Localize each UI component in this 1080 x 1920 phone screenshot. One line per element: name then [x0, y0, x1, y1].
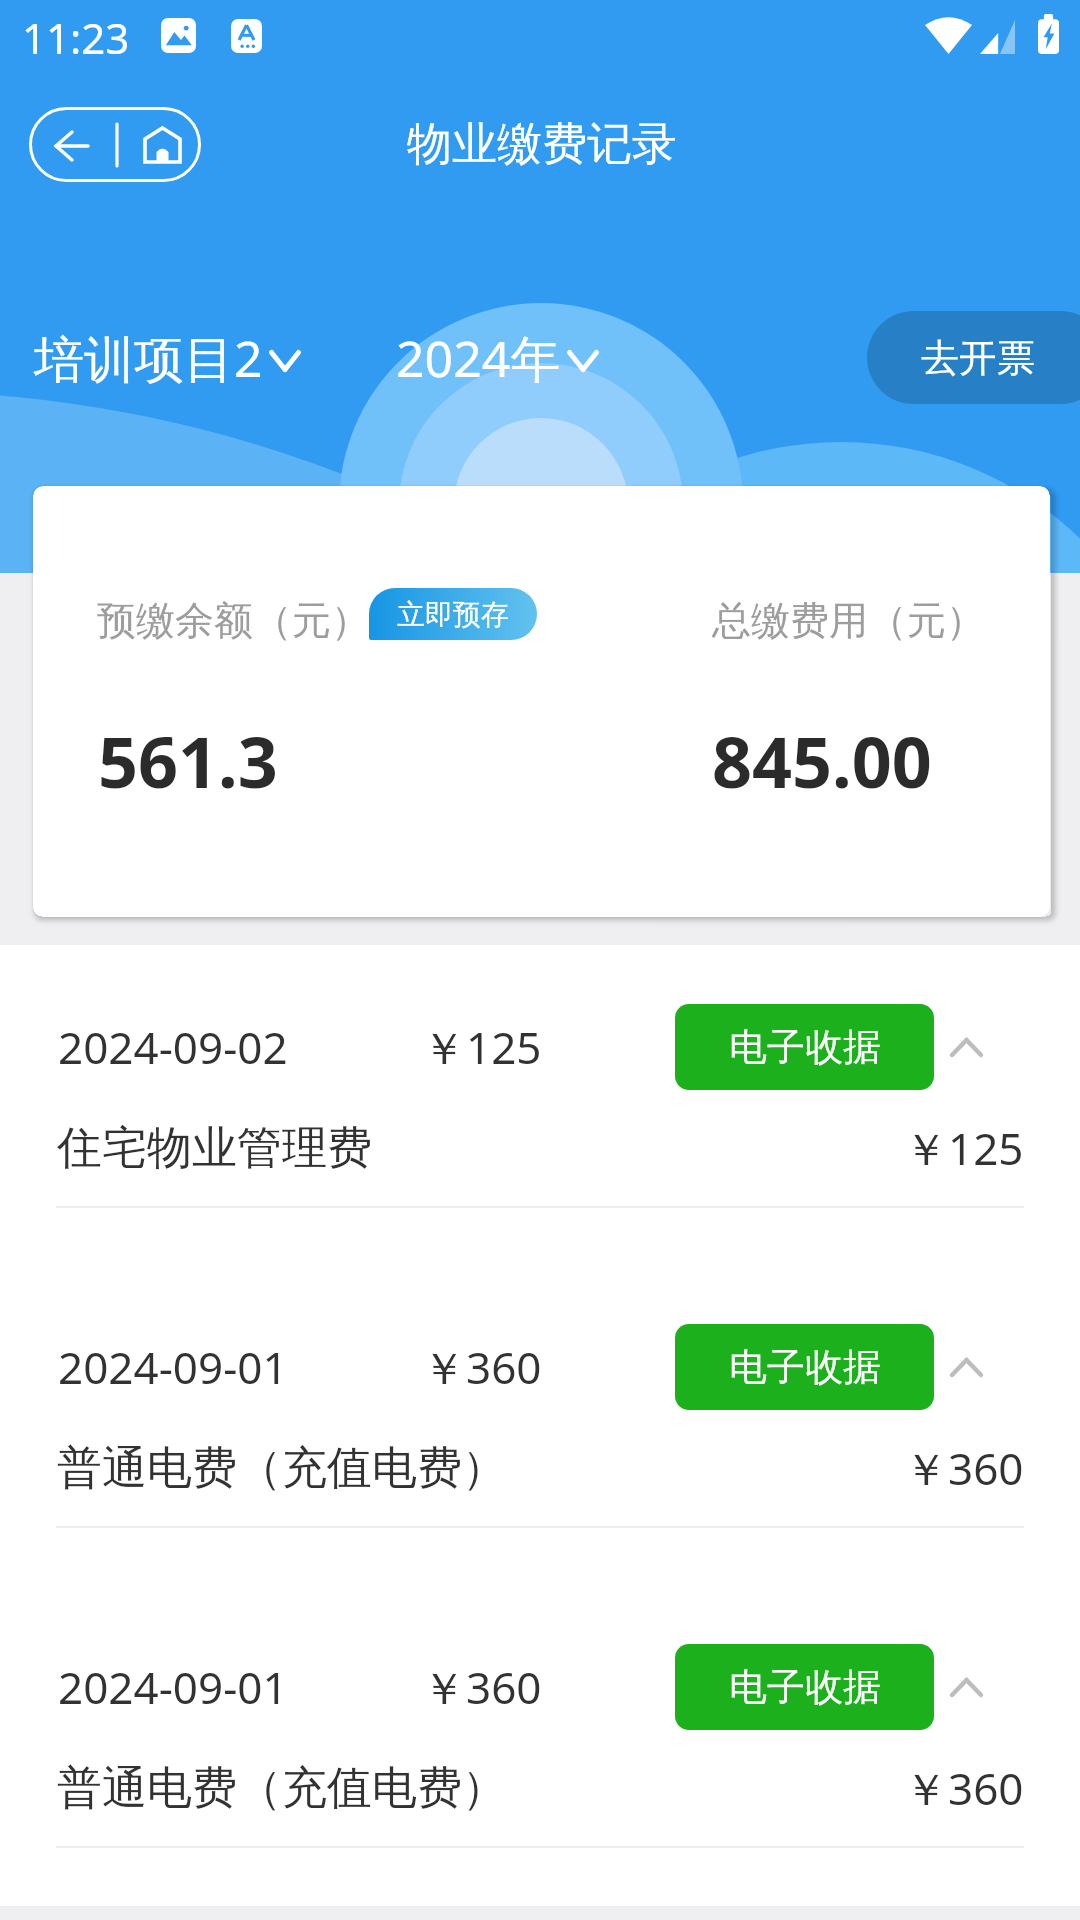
- button[interactable]: Collapse: [936, 1017, 996, 1077]
- staticText: 2024-09-01: [58, 1337, 288, 1397]
- staticText: ￥360: [904, 1438, 1024, 1498]
- staticText: 845.00: [712, 713, 932, 808]
- staticText: 电子收据: [729, 1343, 881, 1391]
- button[interactable]: 电子收据: [675, 1004, 934, 1090]
- staticText: 去开票: [921, 334, 1035, 382]
- button[interactable]: 电子收据: [675, 1644, 934, 1730]
- staticText: 11:23: [22, 9, 130, 66]
- staticText: 2024年: [396, 324, 561, 392]
- staticText: 立即预存: [397, 597, 509, 632]
- staticText: ￥360: [422, 1657, 542, 1717]
- button[interactable]: 2024-09-02: [0, 945, 1080, 1265]
- staticText: 561.3: [98, 713, 278, 808]
- staticText: 普通电费（充值电费）: [57, 1440, 507, 1497]
- staticText: 普通电费（充值电费）: [57, 1760, 507, 1817]
- staticText: ￥360: [904, 1758, 1024, 1818]
- button[interactable]: 培训项目2: [34, 324, 301, 392]
- button[interactable]: 2024年: [396, 324, 599, 392]
- staticText: ￥360: [422, 1337, 542, 1397]
- staticText: 住宅物业管理费: [57, 1120, 372, 1177]
- button[interactable]: Collapse: [936, 1337, 996, 1397]
- staticText: 培训项目2: [34, 324, 263, 392]
- staticText: 2024-09-01: [58, 1657, 288, 1717]
- staticText: 物业缴费记录: [407, 116, 677, 173]
- button[interactable]: 去开票: [867, 311, 1080, 404]
- button[interactable]: Collapse: [936, 1657, 996, 1717]
- staticText: 总缴费用（元）: [712, 596, 985, 645]
- staticText: 预缴余额（元）: [97, 596, 370, 645]
- staticText: ￥125: [904, 1118, 1024, 1178]
- button[interactable]: 立即预存: [369, 588, 537, 640]
- staticText: 2024-09-02: [58, 1017, 288, 1077]
- staticText: 电子收据: [729, 1663, 881, 1711]
- button[interactable]: 电子收据: [675, 1324, 934, 1410]
- staticText: ￥125: [422, 1017, 542, 1077]
- button[interactable]: 2024-09-01: [0, 1265, 1080, 1585]
- button[interactable]: Back and Home: [29, 107, 201, 182]
- staticText: 电子收据: [729, 1023, 881, 1071]
- button[interactable]: 2024-09-01: [0, 1585, 1080, 1905]
